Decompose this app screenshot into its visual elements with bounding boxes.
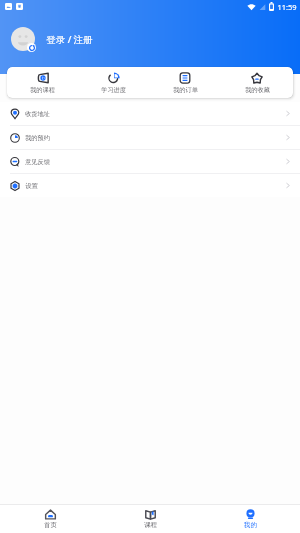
- button[interactable]: 设置: [0, 174, 300, 197]
- staticText: 设置: [25, 182, 38, 190]
- staticText: 我的课程: [30, 86, 55, 94]
- staticText: 我的收藏: [245, 86, 270, 94]
- button[interactable]: 我的订单: [149, 67, 221, 98]
- staticText: 登录 / 注册: [46, 33, 93, 46]
- button[interactable]: 课程: [100, 505, 200, 533]
- staticText: 首页: [44, 521, 57, 529]
- staticText: 11:59: [277, 2, 297, 12]
- button[interactable]: 意见反馈: [0, 150, 300, 173]
- button[interactable]: 我的: [200, 505, 300, 533]
- staticText: 收货地址: [25, 110, 50, 118]
- staticText: 我的: [244, 521, 257, 529]
- staticText: 我的预约: [25, 134, 50, 142]
- button[interactable]: 我的预约: [0, 126, 300, 149]
- button[interactable]: 首页: [0, 505, 100, 533]
- button[interactable]: 我的收藏: [221, 67, 293, 98]
- staticText: 意见反馈: [25, 158, 50, 166]
- staticText: 我的订单: [173, 86, 198, 94]
- staticText: 课程: [144, 521, 157, 529]
- button[interactable]: 我的课程: [7, 67, 78, 98]
- button[interactable]: 学习进度: [78, 67, 149, 98]
- button[interactable]: 收货地址: [0, 102, 300, 125]
- staticText: 学习进度: [101, 86, 126, 94]
